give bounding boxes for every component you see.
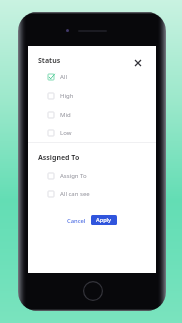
button[interactable]: Apply <box>91 215 117 225</box>
button[interactable]: Cancel <box>62 213 91 229</box>
button[interactable]: All can see <box>28 185 156 203</box>
button[interactable]: Low <box>28 124 156 142</box>
staticText: Low <box>60 129 72 137</box>
staticText: High <box>60 92 74 100</box>
staticText: Apply <box>96 216 112 224</box>
button[interactable]: Close <box>130 55 145 70</box>
staticText: Status <box>38 56 61 66</box>
staticText: Assign To <box>60 172 87 180</box>
staticText: Assigned To <box>38 153 80 163</box>
staticText: All <box>60 73 67 81</box>
staticText: Cancel <box>67 217 86 225</box>
button[interactable]: High <box>28 87 156 105</box>
button[interactable]: Assign To <box>28 167 156 185</box>
button[interactable]: Home <box>83 281 103 301</box>
staticText: All can see <box>60 190 90 198</box>
staticText: Mid <box>60 111 71 119</box>
button[interactable]: All <box>28 68 156 86</box>
button[interactable]: Mid <box>28 106 156 124</box>
